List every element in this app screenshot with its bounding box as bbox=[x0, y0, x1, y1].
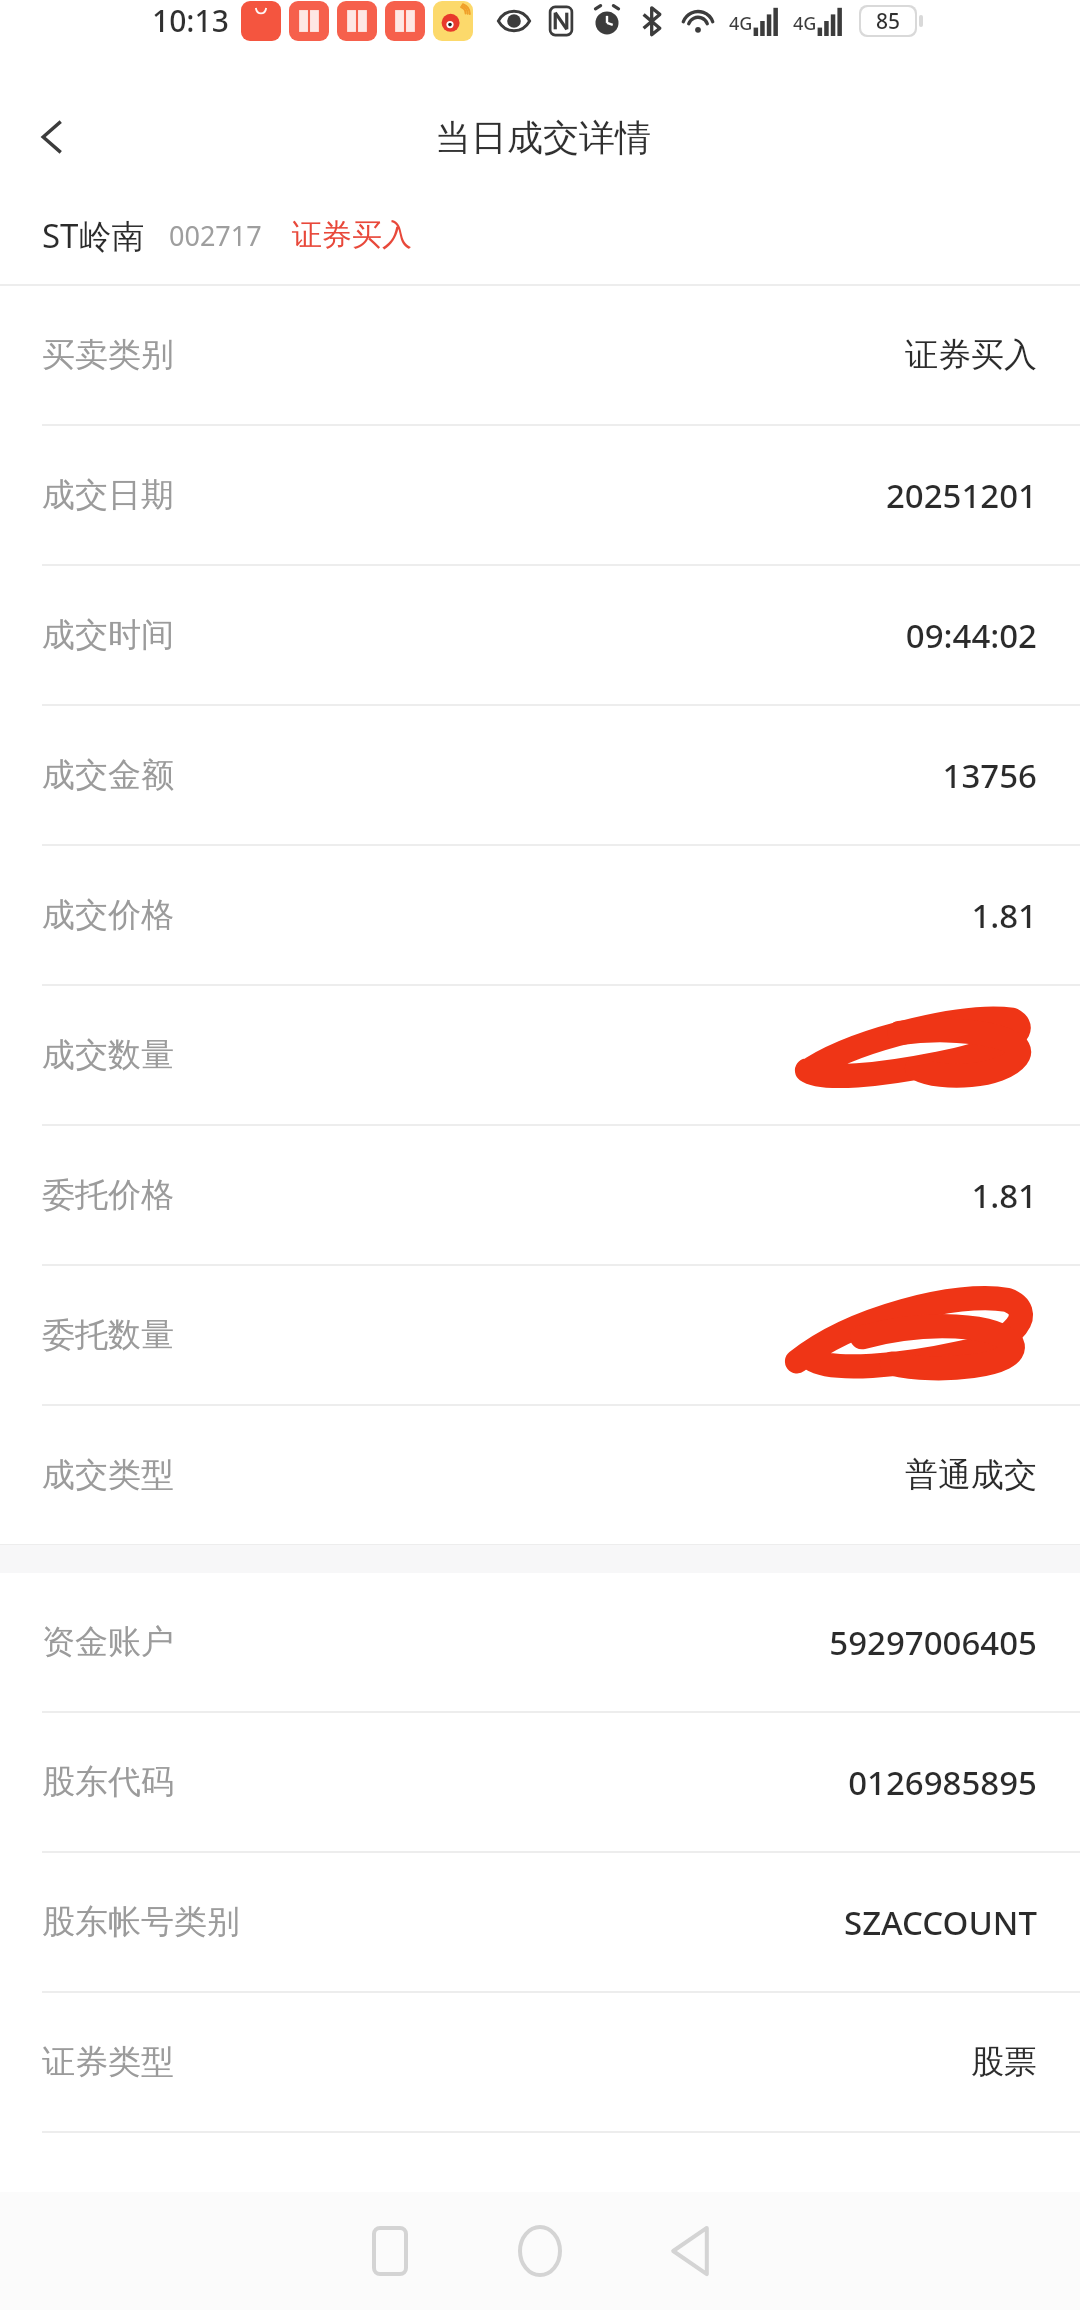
button[interactable]: 股东代码 bbox=[0, 1713, 1080, 1851]
button[interactable]: 证券类型 bbox=[0, 1993, 1080, 2131]
staticText: 普通成交 bbox=[905, 1454, 1037, 1496]
button[interactable]: Back bbox=[615, 2192, 765, 2310]
staticText: 证券类型 bbox=[42, 2041, 174, 2083]
staticText: 10:13 bbox=[152, 0, 229, 41]
staticText: 1.81 bbox=[971, 1173, 1037, 1218]
staticText: 成交价格 bbox=[42, 894, 174, 936]
button[interactable]: Back bbox=[14, 99, 90, 175]
button[interactable]: 委托数量 bbox=[0, 1266, 1080, 1404]
staticText: 4G bbox=[729, 11, 753, 36]
staticText: 成交类型 bbox=[42, 1454, 174, 1496]
staticText: 09:44:02 bbox=[905, 613, 1037, 658]
staticText: 当日成交详情 bbox=[435, 115, 651, 160]
staticText: 证券买入 bbox=[292, 216, 412, 254]
staticText: 20251201 bbox=[885, 473, 1037, 518]
staticText: 1.81 bbox=[971, 893, 1037, 938]
staticText: 成交时间 bbox=[42, 614, 174, 656]
staticText: 59297006405 bbox=[829, 1620, 1037, 1665]
staticText: SZACCOUNT bbox=[843, 1900, 1037, 1945]
button[interactable]: 股东帐号类别 bbox=[0, 1853, 1080, 1991]
staticText: 买卖类别 bbox=[42, 334, 174, 376]
staticText: 委托数量 bbox=[42, 1314, 174, 1356]
button[interactable]: 成交类型 bbox=[0, 1406, 1080, 1544]
staticText: 股东帐号类别 bbox=[42, 1901, 240, 1943]
button[interactable]: 买卖类别 bbox=[0, 286, 1080, 424]
staticText: 002717 bbox=[169, 217, 262, 254]
button[interactable]: Recents bbox=[315, 2192, 465, 2310]
staticText: 委托价格 bbox=[42, 1174, 174, 1216]
button[interactable]: 成交数量 bbox=[0, 986, 1080, 1124]
staticText: 85 bbox=[876, 7, 901, 35]
staticText: 股东代码 bbox=[42, 1761, 174, 1803]
staticText: 证券买入 bbox=[905, 334, 1037, 376]
staticText: 成交金额 bbox=[42, 754, 174, 796]
button[interactable]: 委托价格 bbox=[0, 1126, 1080, 1264]
staticText: 13756 bbox=[942, 753, 1037, 798]
button[interactable]: 成交价格 bbox=[0, 846, 1080, 984]
staticText: 0126985895 bbox=[848, 1760, 1037, 1805]
button[interactable]: Home bbox=[465, 2192, 615, 2310]
staticText: ST岭南 bbox=[42, 213, 145, 258]
staticText: 成交日期 bbox=[42, 474, 174, 516]
staticText: 4G bbox=[793, 11, 817, 36]
staticText: 资金账户 bbox=[42, 1621, 174, 1663]
button[interactable]: 成交日期 bbox=[0, 426, 1080, 564]
button[interactable]: 资金账户 bbox=[0, 1573, 1080, 1711]
button[interactable]: 成交金额 bbox=[0, 706, 1080, 844]
staticText: 股票 bbox=[971, 2041, 1037, 2083]
button[interactable]: 成交时间 bbox=[0, 566, 1080, 704]
staticText: 成交数量 bbox=[42, 1034, 174, 1076]
